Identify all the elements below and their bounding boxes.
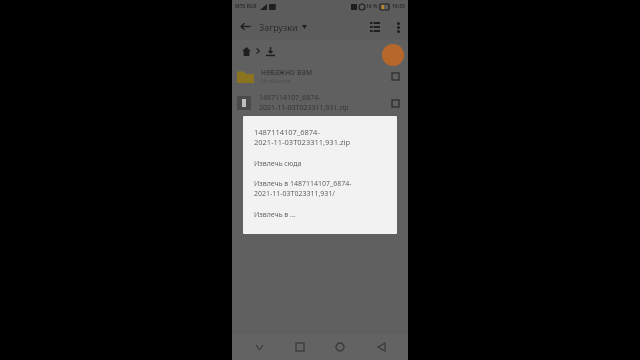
button[interactable]: Извлечь в 1487114107_6874-	[254, 179, 386, 199]
staticText: 2021-11-03T023311,931/	[254, 189, 335, 199]
staticText: Извлечь сюда	[254, 159, 302, 169]
staticText: 16 %	[366, 3, 378, 10]
staticText: 2021-11-03T023311,931.zip	[259, 103, 349, 113]
button[interactable]: Загрузки	[263, 44, 277, 58]
button[interactable]: Загрузки	[259, 21, 362, 33]
button[interactable]: Выбрать	[388, 69, 402, 83]
button[interactable]: Главная	[239, 44, 253, 58]
button[interactable]: Назад	[368, 334, 394, 360]
staticText: 16 объектов	[261, 78, 291, 85]
button[interactable]: Извлечь сюда	[254, 159, 386, 169]
staticText: 2021-11-03T023311,931.zip	[254, 137, 351, 147]
button[interactable]: Последние	[287, 334, 313, 360]
staticText: Извлечь в 1487114107_6874-	[254, 179, 352, 189]
button[interactable]: 1487114107_6874-	[232, 89, 408, 117]
staticText: Извлечь в ...	[254, 210, 296, 220]
button[interactable]: неважно вам	[232, 62, 408, 89]
staticText: Загрузки	[259, 21, 298, 33]
staticText: 1487114107_6874-	[259, 93, 321, 103]
button[interactable]: Извлечь в ...	[254, 210, 386, 220]
staticText: неважно вам	[261, 66, 313, 77]
button[interactable]: Домой	[327, 334, 353, 360]
button[interactable]: Скрыть	[246, 334, 272, 360]
staticText: 1487114107_6874-	[254, 127, 320, 137]
button[interactable]: Вид списка	[362, 14, 388, 40]
button[interactable]: Создать	[382, 44, 404, 66]
button[interactable]: Ещё	[388, 17, 408, 37]
button[interactable]: Назад	[232, 13, 259, 40]
button[interactable]: Выбрать	[388, 96, 402, 110]
staticText: 19:53	[392, 3, 405, 10]
staticText: MTS RUS	[235, 3, 257, 10]
